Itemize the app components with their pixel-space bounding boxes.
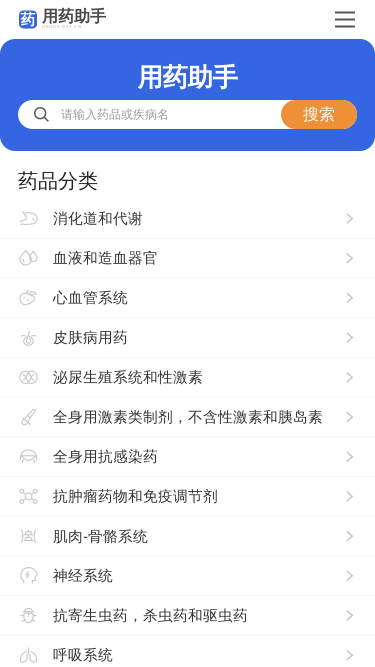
staticText: 全身用抗感染药	[53, 448, 158, 466]
staticText: 药	[20, 10, 35, 28]
staticText: 用药助手	[137, 62, 237, 93]
staticText: 肌肉-骨骼系统	[53, 526, 148, 546]
staticText: 心血管系统	[53, 289, 128, 307]
staticText: 用药助手	[42, 7, 106, 26]
staticText: 药品分类	[18, 169, 98, 193]
staticText: 消化道和代谢	[53, 209, 143, 227]
button[interactable]: 全身用激素类制剂，不含性激素和胰岛素	[0, 397, 375, 437]
staticText: 呼吸系统	[53, 646, 113, 664]
button[interactable]: 心血管系统	[0, 278, 375, 318]
button[interactable]: 皮肤病用药	[0, 318, 375, 358]
staticText: 全身用激素类制剂，不含性激素和胰岛素	[53, 408, 323, 426]
staticText: 皮肤病用药	[53, 329, 128, 347]
staticText: 血液和造血器官	[53, 249, 158, 267]
button[interactable]: 菜单	[323, 0, 367, 39]
button[interactable]: 搜索	[281, 100, 357, 129]
button[interactable]: 血液和造血器官	[0, 239, 375, 278]
button[interactable]: 泌尿生殖系统和性激素	[0, 358, 375, 397]
staticText: 神经系统	[53, 567, 113, 585]
button[interactable]: 呼吸系统	[0, 636, 375, 667]
button[interactable]: 神经系统	[0, 556, 375, 596]
staticText: 搜索	[303, 105, 335, 124]
button[interactable]: 肌肉-骨骼系统	[0, 517, 375, 556]
staticText: 抗肿瘤药物和免疫调节剂	[53, 487, 218, 505]
button[interactable]: 药	[19, 0, 106, 39]
staticText: 抗寄生虫药，杀虫药和驱虫药	[53, 606, 248, 624]
button[interactable]: 全身用抗感染药	[0, 437, 375, 477]
staticText: D R U G S . D X Y . C N	[42, 24, 81, 29]
button[interactable]: 抗寄生虫药，杀虫药和驱虫药	[0, 596, 375, 636]
button[interactable]: 抗肿瘤药物和免疫调节剂	[0, 477, 375, 517]
button[interactable]: 消化道和代谢	[0, 199, 375, 239]
staticText: 请输入药品或疾病名	[61, 107, 169, 122]
staticText: 泌尿生殖系统和性激素	[53, 368, 203, 386]
